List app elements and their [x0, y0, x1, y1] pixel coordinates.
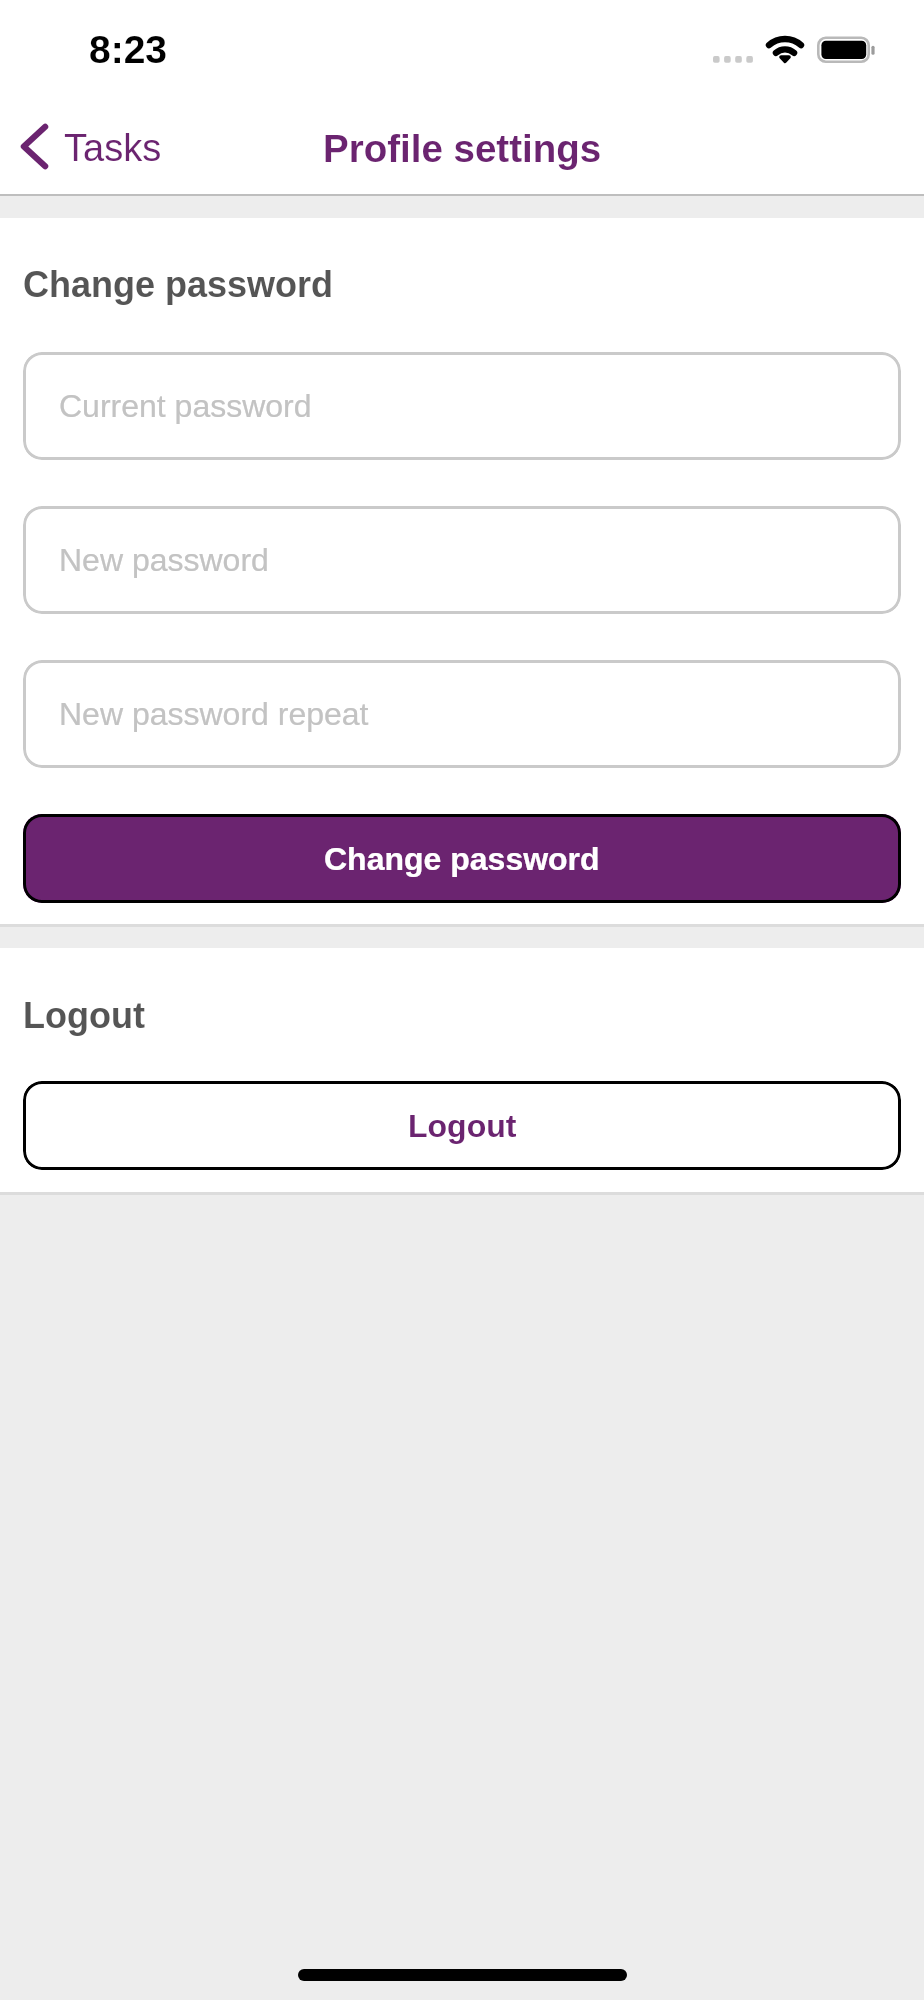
staticText: Tasks [64, 127, 162, 169]
staticText: Logout [23, 995, 145, 1035]
staticText: Change password [324, 841, 600, 877]
button[interactable]: New password [23, 506, 901, 614]
staticText: New password [59, 542, 269, 578]
staticText: Logout [408, 1108, 517, 1144]
staticText: 8:23 [89, 28, 168, 72]
button[interactable]: Logout [23, 1081, 901, 1170]
staticText: Current password [59, 388, 312, 424]
button[interactable]: Current password [23, 352, 901, 460]
button[interactable]: New password repeat [23, 660, 901, 768]
button[interactable]: Change password [23, 814, 901, 903]
staticText: Profile settings [323, 127, 602, 170]
staticText: Change password [23, 264, 334, 304]
staticText: New password repeat [59, 696, 369, 732]
button[interactable]: Back to Tasks [0, 115, 176, 182]
